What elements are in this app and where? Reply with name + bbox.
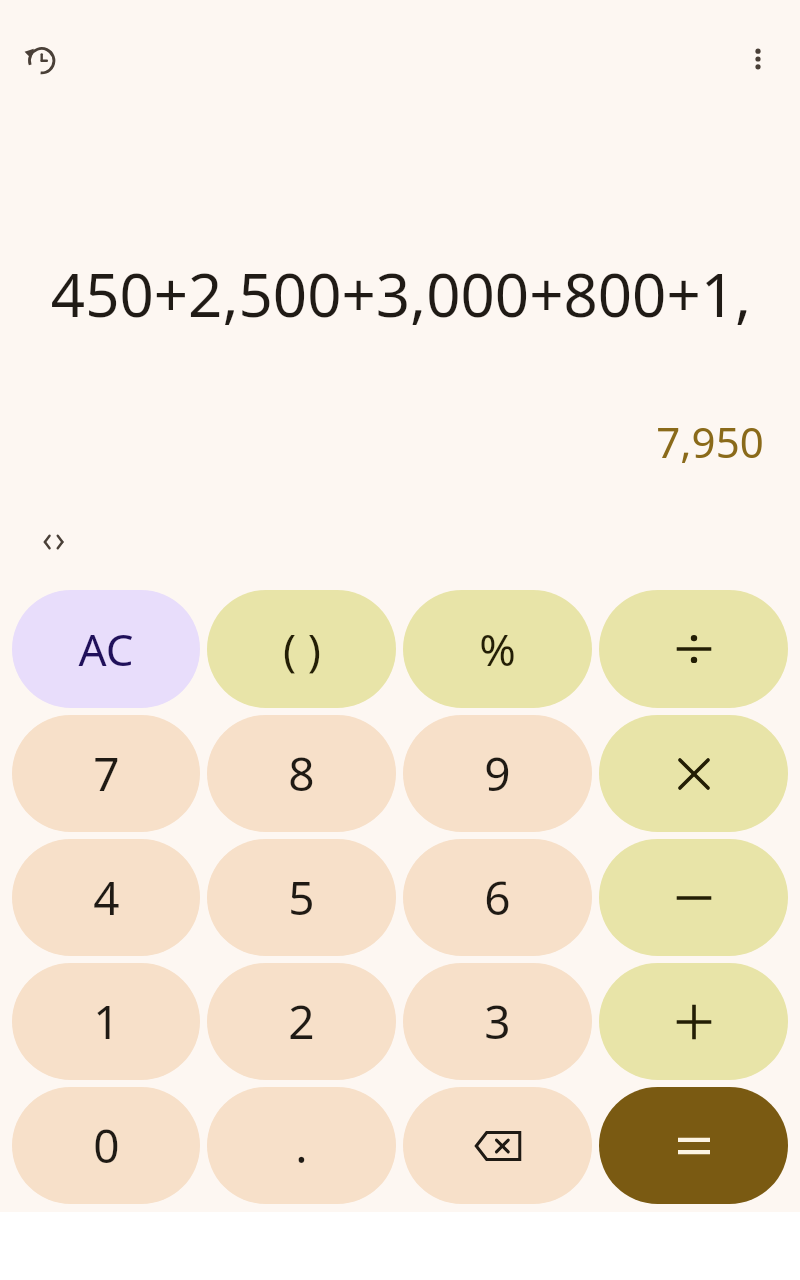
button[interactable]: 0 xyxy=(12,1087,200,1204)
staticText: 7,950 xyxy=(656,413,764,470)
button[interactable]: Plus xyxy=(599,963,788,1080)
button[interactable]: . xyxy=(207,1087,396,1204)
button[interactable]: 7 xyxy=(12,715,200,832)
button[interactable]: Scroll expression xyxy=(30,522,80,562)
button[interactable]: % xyxy=(403,590,592,708)
staticText: 6 xyxy=(484,866,511,929)
staticText: . xyxy=(295,1114,308,1177)
staticText: % xyxy=(479,619,516,679)
staticText: AC xyxy=(78,619,134,679)
staticText: 450+2,500+3,000+800+1,200 xyxy=(36,253,766,335)
button[interactable]: 3 xyxy=(403,963,592,1080)
staticText: 9 xyxy=(484,742,511,805)
staticText: ( ) xyxy=(283,619,321,679)
button[interactable]: 4 xyxy=(12,839,200,956)
button[interactable]: 1 xyxy=(12,963,200,1080)
button[interactable]: 5 xyxy=(207,839,396,956)
button[interactable]: Backspace xyxy=(403,1087,592,1204)
staticText: 5 xyxy=(288,866,315,929)
button[interactable]: 6 xyxy=(403,839,592,956)
button[interactable]: 2 xyxy=(207,963,396,1080)
staticText: 7 xyxy=(93,742,120,805)
button[interactable]: AC xyxy=(12,590,200,708)
button[interactable]: 9 xyxy=(403,715,592,832)
button[interactable]: Equals xyxy=(599,1087,788,1204)
button[interactable]: 8 xyxy=(207,715,396,832)
staticText: 1 xyxy=(93,990,120,1053)
staticText: 8 xyxy=(288,742,315,805)
staticText: 0 xyxy=(93,1114,120,1177)
button[interactable]: More options xyxy=(732,33,784,85)
button[interactable]: History xyxy=(14,33,66,85)
staticText: 3 xyxy=(484,990,511,1053)
staticText: 4 xyxy=(93,866,120,929)
button[interactable]: ( ) xyxy=(207,590,396,708)
button[interactable]: Divide xyxy=(599,590,788,708)
staticText: 2 xyxy=(288,990,315,1053)
button[interactable]: Minus xyxy=(599,839,788,956)
button[interactable]: Multiply xyxy=(599,715,788,832)
